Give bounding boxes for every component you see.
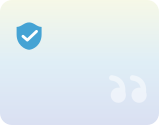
button[interactable]: Verified quote card: [0, 0, 159, 125]
